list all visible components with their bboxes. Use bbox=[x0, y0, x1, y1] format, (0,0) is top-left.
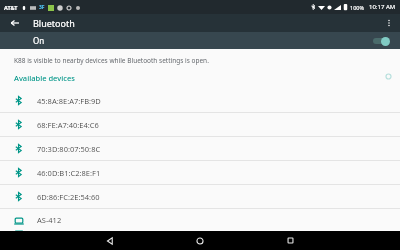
button[interactable]: 46:0D:B1:C2:8E:F1 bbox=[0, 161, 400, 184]
staticText: On bbox=[33, 35, 45, 46]
button[interactable]: 68:FE:A7:40:E4:C6 bbox=[0, 113, 400, 136]
button[interactable]: 6D:86:FC:2E:54:60 bbox=[0, 185, 400, 208]
staticText: 70:3D:80:07:50:8C bbox=[37, 144, 101, 154]
staticText: 100% bbox=[350, 4, 365, 11]
staticText: Available devices bbox=[14, 73, 75, 83]
staticText: 45:8A:8E:A7:FB:9D bbox=[37, 96, 101, 106]
button[interactable]: 70:3D:80:07:50:8C bbox=[0, 137, 400, 160]
button[interactable]: On bbox=[0, 32, 400, 49]
button[interactable]: Recent apps bbox=[245, 231, 335, 250]
button[interactable]: Back bbox=[65, 231, 155, 250]
staticText: 10:17 AM bbox=[369, 3, 396, 11]
staticText: 3F bbox=[39, 4, 45, 11]
staticText: 68:FE:A7:40:E4:C6 bbox=[37, 120, 99, 130]
button[interactable]: Back bbox=[7, 15, 23, 31]
button[interactable]: Home bbox=[155, 231, 245, 250]
staticText: K88 is visible to nearby devices while B… bbox=[14, 56, 209, 65]
staticText: AT&T bbox=[4, 4, 18, 11]
staticText: 46:0D:B1:C2:8E:F1 bbox=[37, 168, 101, 178]
button[interactable]: 45:8A:8E:A7:FB:9D bbox=[0, 89, 400, 112]
staticText: Bluetooth bbox=[33, 17, 75, 29]
button[interactable]: More options bbox=[382, 16, 396, 30]
staticText: 6D:86:FC:2E:54:60 bbox=[37, 192, 100, 202]
staticText: AS-412 bbox=[37, 215, 62, 225]
button[interactable]: AS-412 bbox=[0, 209, 400, 231]
